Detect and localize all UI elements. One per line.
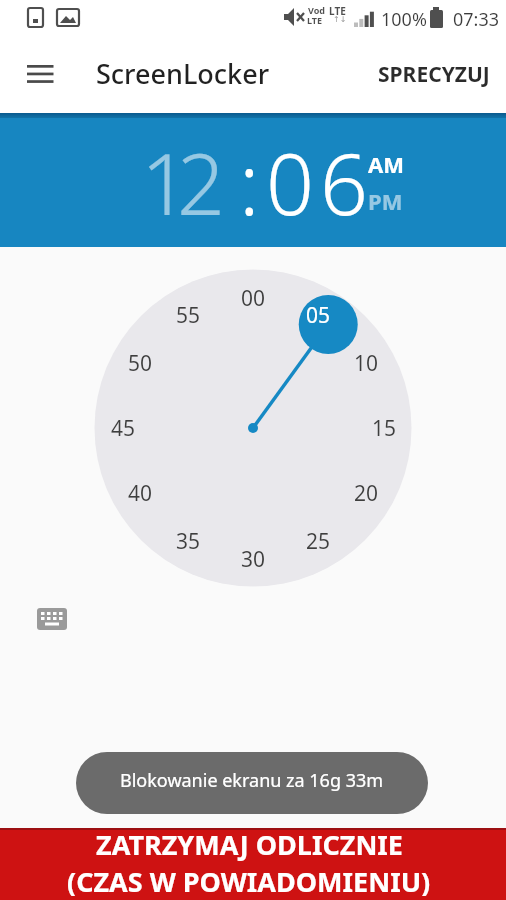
button[interactable]: 45 <box>99 412 147 444</box>
staticText: : <box>239 125 260 239</box>
staticText: ZATRZYMAJ ODLICZNIE <box>96 826 403 863</box>
button[interactable]: AM <box>368 149 404 179</box>
button[interactable]: 05 <box>294 299 342 331</box>
button[interactable]: 10 <box>342 347 390 379</box>
staticText: SPRECYZUJ <box>378 60 490 89</box>
staticText: 25 <box>306 527 331 556</box>
staticText: 05 <box>306 301 331 330</box>
button[interactable]: 20 <box>342 477 390 509</box>
button[interactable] <box>30 599 74 639</box>
button[interactable]: 35 <box>164 525 212 557</box>
staticText: 20 <box>354 479 379 508</box>
staticText: 00 <box>241 284 266 313</box>
button[interactable]: ZATRZYMAJ ODLICZNIE <box>0 828 506 900</box>
staticText: 15 <box>372 414 397 443</box>
button[interactable]: PM <box>368 186 403 216</box>
staticText: 40 <box>128 479 153 508</box>
button[interactable]: 06 <box>266 125 374 239</box>
staticText: Blokowanie ekranu za 16g 33m <box>120 768 384 793</box>
staticText: 30 <box>241 545 266 574</box>
staticText: ↑↓ <box>333 15 347 24</box>
staticText: (CZAS W POWIADOMIENIU) <box>67 863 431 896</box>
button[interactable]: 12 <box>141 125 213 239</box>
staticText: Vod <box>308 4 325 16</box>
button[interactable]: Blokowanie ekranu za 16g 33m <box>76 752 428 814</box>
staticText: LTE <box>307 14 323 26</box>
staticText: 55 <box>176 301 201 330</box>
button[interactable]: 30 <box>229 543 277 575</box>
staticText: 10 <box>354 349 379 378</box>
staticText: 35 <box>176 527 201 556</box>
button[interactable]: SPRECYZUJ <box>370 52 498 97</box>
button[interactable]: 00 <box>229 282 277 314</box>
staticText: ScreenLocker <box>96 55 270 92</box>
staticText: 07:33 <box>453 7 500 32</box>
staticText: 45 <box>111 414 136 443</box>
button[interactable] <box>17 52 63 96</box>
staticText: 100% <box>381 7 427 32</box>
button[interactable]: 55 <box>164 299 212 331</box>
staticText: 50 <box>128 349 153 378</box>
staticText: LTE <box>329 4 346 18</box>
button[interactable]: 15 <box>360 412 408 444</box>
button[interactable]: 50 <box>116 347 164 379</box>
button[interactable]: 40 <box>116 477 164 509</box>
button[interactable]: 25 <box>294 525 342 557</box>
